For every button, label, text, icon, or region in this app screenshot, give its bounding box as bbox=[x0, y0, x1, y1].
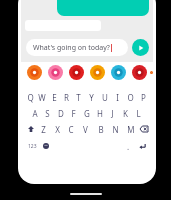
staticText: J bbox=[111, 108, 114, 119]
button[interactable]: K bbox=[119, 107, 132, 119]
button[interactable]: U bbox=[98, 91, 111, 103]
button[interactable]: H bbox=[93, 107, 106, 119]
button[interactable]: Emoji bbox=[39, 140, 53, 152]
staticText: Y bbox=[89, 92, 94, 103]
button[interactable]: Sticker 2 bbox=[45, 62, 65, 82]
staticText: . bbox=[127, 141, 130, 152]
staticText: U bbox=[102, 92, 108, 103]
button[interactable]: S bbox=[41, 107, 54, 119]
button[interactable]: G bbox=[80, 107, 93, 119]
staticText: 123 bbox=[28, 143, 37, 150]
staticText: S bbox=[45, 108, 50, 119]
button[interactable]: W bbox=[36, 91, 48, 103]
staticText: M bbox=[127, 124, 135, 135]
button[interactable] bbox=[57, 0, 149, 16]
button[interactable]: Sticker 7 bbox=[150, 62, 153, 82]
staticText: C bbox=[68, 124, 74, 135]
button[interactable]: I bbox=[111, 91, 124, 103]
staticText: G bbox=[84, 108, 90, 119]
staticText: H bbox=[97, 108, 103, 119]
button[interactable]: L bbox=[132, 107, 145, 119]
button[interactable]: Sticker 6 bbox=[129, 62, 149, 82]
button[interactable]: . bbox=[121, 140, 135, 152]
button[interactable]: B bbox=[93, 123, 108, 135]
button[interactable]: Sticker 5 bbox=[108, 62, 128, 82]
button[interactable]: C bbox=[64, 123, 78, 135]
staticText: D bbox=[58, 108, 64, 119]
button[interactable]: What's going on today? bbox=[26, 39, 128, 56]
staticText: Q bbox=[27, 92, 34, 103]
staticText: I bbox=[116, 92, 119, 103]
staticText: N bbox=[112, 124, 119, 135]
button[interactable]: D bbox=[54, 107, 67, 119]
button[interactable]: Enter bbox=[135, 140, 149, 152]
staticText: T bbox=[76, 92, 81, 103]
staticText: P bbox=[141, 92, 146, 103]
staticText: What's going on today? bbox=[33, 43, 110, 53]
button[interactable]: E bbox=[48, 91, 60, 103]
button[interactable]: Sticker 3 bbox=[66, 62, 86, 82]
button[interactable]: F bbox=[67, 107, 80, 119]
staticText: F bbox=[71, 108, 76, 119]
button[interactable]: P bbox=[137, 91, 150, 103]
staticText: X bbox=[55, 124, 60, 135]
button[interactable]: A bbox=[29, 107, 41, 119]
button[interactable]: Backspace bbox=[138, 123, 149, 135]
staticText: V bbox=[83, 124, 88, 135]
button[interactable]: Z bbox=[36, 123, 50, 135]
staticText: B bbox=[98, 124, 104, 135]
staticText: O bbox=[127, 92, 134, 103]
button[interactable]: N bbox=[108, 123, 123, 135]
staticText: R bbox=[64, 92, 69, 103]
button[interactable]: T bbox=[72, 91, 85, 103]
staticText: E bbox=[52, 92, 57, 103]
staticText: W bbox=[38, 92, 46, 103]
button[interactable]: Shift bbox=[25, 123, 36, 135]
button[interactable]: 123 bbox=[25, 140, 39, 152]
staticText: A bbox=[32, 108, 38, 119]
button[interactable]: R bbox=[60, 91, 72, 103]
button[interactable]: J bbox=[106, 107, 119, 119]
button[interactable]: M bbox=[123, 123, 138, 135]
button[interactable]: Send bbox=[132, 39, 149, 56]
button[interactable]: Sticker 4 bbox=[87, 62, 107, 82]
staticText: L bbox=[136, 108, 141, 119]
button[interactable]: Sticker 1 bbox=[24, 62, 44, 82]
staticText: Z bbox=[41, 124, 46, 135]
button[interactable]: O bbox=[124, 91, 137, 103]
button[interactable]: Y bbox=[85, 91, 98, 103]
button[interactable]: Q bbox=[24, 91, 36, 103]
button[interactable]: X bbox=[50, 123, 64, 135]
staticText: K bbox=[123, 108, 128, 119]
button[interactable]: V bbox=[78, 123, 93, 135]
